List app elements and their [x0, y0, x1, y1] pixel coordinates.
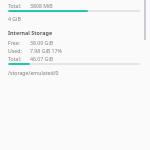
staticText: 46.07 GiB — [30, 55, 54, 62]
button[interactable]: Free: — [8, 38, 140, 46]
button[interactable]: 4 GiB — [8, 14, 140, 22]
staticText: 7.98 GiB 17% — [30, 47, 62, 54]
staticText: Total: — [8, 55, 22, 62]
button[interactable]: /storage/emulated/0 — [8, 68, 140, 76]
staticText: Internal Storage — [8, 29, 53, 36]
button[interactable]: Used: — [8, 46, 140, 54]
staticText: Used: — [8, 47, 22, 54]
button[interactable]: Internal Storage — [8, 28, 140, 37]
staticText: 38.09 GiB — [30, 39, 54, 46]
staticText: Free: — [8, 39, 20, 46]
button[interactable]: Total: — [8, 1, 140, 9]
staticText: /storage/emulated/0 — [8, 69, 59, 76]
button[interactable]: Total: — [8, 54, 140, 62]
staticText: Total: — [8, 2, 22, 9]
staticText: 4 GiB — [8, 15, 21, 22]
staticText: 3808 MiB — [30, 2, 53, 9]
